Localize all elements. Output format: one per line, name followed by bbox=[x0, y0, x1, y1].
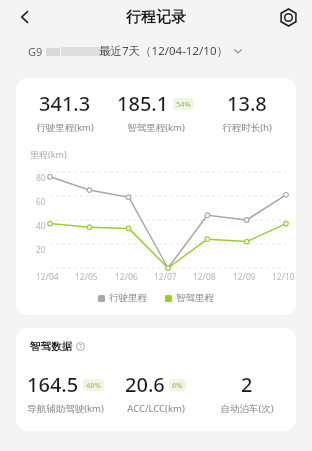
staticText: 自动泊车(次) bbox=[220, 402, 274, 415]
staticText: 导航辅助驾驶(km) bbox=[27, 402, 104, 415]
staticText: 12/05 bbox=[75, 271, 98, 283]
staticText: 智驾数据 bbox=[30, 340, 72, 353]
staticText: 6% bbox=[172, 380, 183, 390]
staticText: 12/10 bbox=[272, 271, 295, 283]
staticText: 54% bbox=[176, 99, 191, 109]
staticText: 12/07 bbox=[154, 271, 177, 283]
staticText: 12/08 bbox=[193, 271, 216, 283]
staticText: 40 bbox=[36, 220, 46, 232]
button[interactable]: 20.6 bbox=[110, 371, 201, 415]
staticText: 60 bbox=[36, 196, 46, 208]
staticText: 行驶里程 bbox=[109, 292, 147, 304]
staticText: 行驶里程(km) bbox=[36, 121, 94, 134]
button[interactable]: 设置 bbox=[273, 2, 303, 32]
staticText: 行程记录 bbox=[126, 8, 186, 27]
staticText: 20.6 bbox=[125, 371, 165, 398]
button[interactable]: 最近7天（12/04-12/10） bbox=[99, 43, 243, 59]
staticText: 智驾里程 bbox=[176, 292, 214, 304]
button[interactable]: 164.5 bbox=[20, 371, 110, 415]
staticText: G9 bbox=[28, 44, 43, 59]
button[interactable]: 返回 bbox=[10, 2, 40, 32]
button[interactable]: 341.3 bbox=[20, 90, 110, 134]
staticText: 185.1 bbox=[117, 90, 169, 117]
staticText: 行程时长(h) bbox=[222, 121, 272, 134]
staticText: 12/04 bbox=[36, 271, 59, 283]
staticText: 341.3 bbox=[39, 90, 91, 117]
staticText: 最近7天（12/04-12/10） bbox=[99, 43, 228, 59]
staticText: 20 bbox=[36, 244, 46, 256]
staticText: 里程(km) bbox=[30, 148, 67, 160]
staticText: 164.5 bbox=[27, 371, 79, 398]
staticText: ? bbox=[79, 342, 82, 351]
staticText: 48% bbox=[86, 380, 101, 390]
staticText: ACC/LCC(km) bbox=[127, 402, 185, 415]
staticText: 13.8 bbox=[227, 90, 267, 117]
button[interactable]: 行驶里程 bbox=[98, 292, 147, 304]
button[interactable]: 智驾里程 bbox=[165, 292, 214, 304]
button[interactable]: 说明 bbox=[75, 341, 86, 352]
button[interactable]: 13.8 bbox=[201, 90, 292, 134]
button[interactable]: 2 bbox=[201, 371, 292, 415]
staticText: 智驾里程(km) bbox=[127, 121, 185, 134]
staticText: 12/09 bbox=[233, 271, 256, 283]
staticText: 12/06 bbox=[115, 271, 138, 283]
button[interactable]: 185.1 bbox=[110, 90, 201, 134]
staticText: 2 bbox=[241, 371, 253, 398]
staticText: 80 bbox=[36, 172, 46, 184]
